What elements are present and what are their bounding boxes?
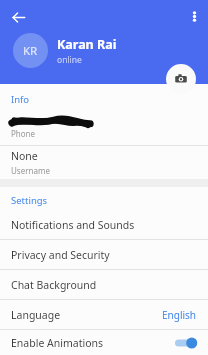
staticText: None <box>11 149 38 163</box>
button[interactable]: Back <box>5 4 31 30</box>
staticText: Phone <box>11 128 36 139</box>
staticText: English <box>162 308 197 322</box>
button[interactable]: Change photo <box>166 64 196 94</box>
button[interactable]: Enable Animations <box>0 330 208 355</box>
button[interactable]: Language <box>0 300 208 329</box>
staticText: Info <box>11 93 30 106</box>
button[interactable]: More options <box>182 4 206 28</box>
button[interactable]: Privacy and Security <box>0 240 208 269</box>
staticText: Chat Background <box>11 278 97 292</box>
staticText: Settings <box>11 194 48 207</box>
button[interactable]: Chat Background <box>0 270 208 299</box>
staticText: Notifications and Sounds <box>11 218 135 232</box>
staticText: online <box>57 54 82 66</box>
button[interactable]: Phone <box>0 109 208 145</box>
staticText: Karan Rai <box>57 36 117 53</box>
button[interactable]: None <box>0 146 208 179</box>
staticText: KR <box>23 43 38 59</box>
button[interactable]: Notifications and Sounds <box>0 210 208 239</box>
staticText: Username <box>11 165 50 176</box>
staticText: Language <box>11 308 61 322</box>
staticText: Privacy and Security <box>11 248 110 262</box>
staticText: Enable Animations <box>11 336 104 350</box>
